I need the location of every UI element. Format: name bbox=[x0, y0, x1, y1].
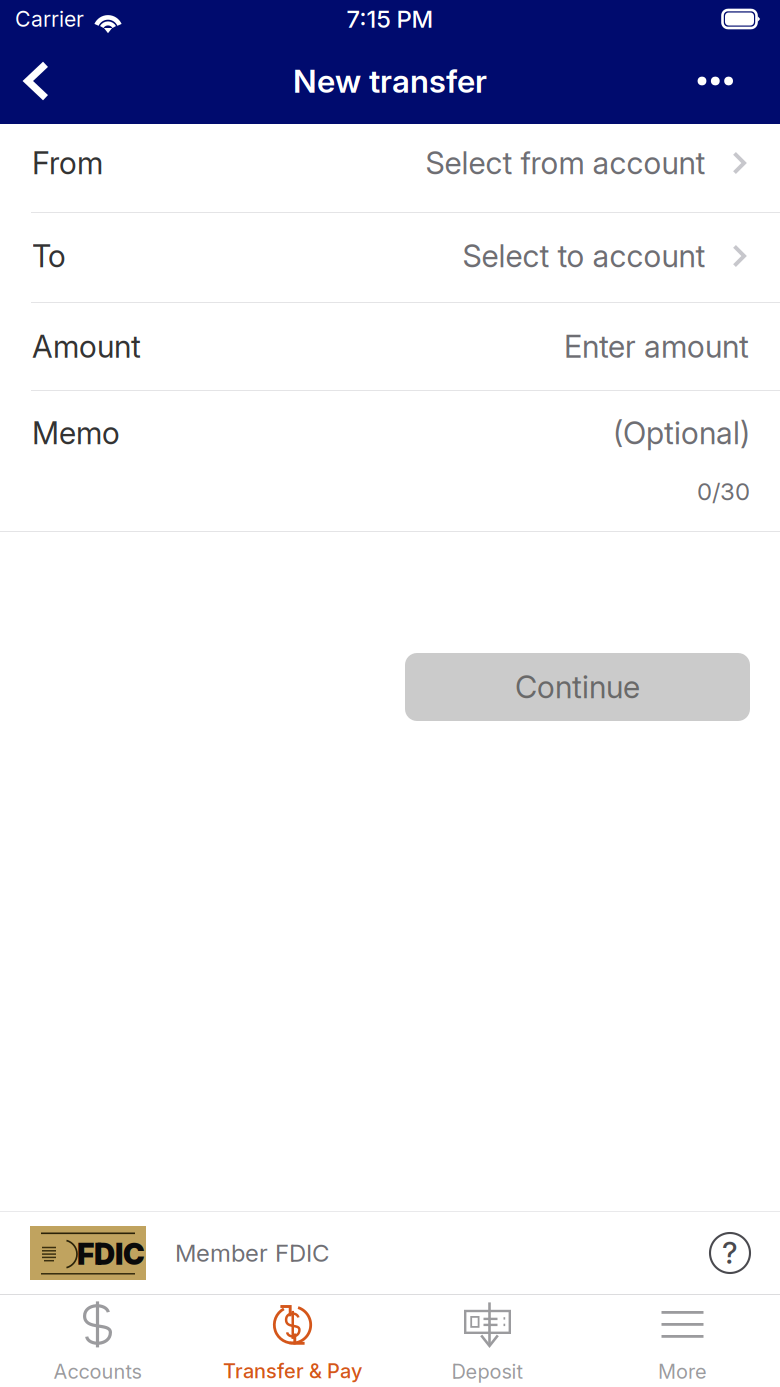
button[interactable]: Deposit bbox=[390, 1295, 585, 1387]
button[interactable]: Memo bbox=[0, 391, 780, 531]
staticText: 0/30 bbox=[697, 477, 750, 506]
button[interactable]: More bbox=[585, 1295, 780, 1387]
staticText: From bbox=[32, 144, 103, 181]
button[interactable]: Transfer & Pay bbox=[195, 1295, 390, 1387]
button[interactable]: From bbox=[0, 124, 780, 212]
button[interactable]: Continue bbox=[405, 653, 750, 721]
staticText: Amount bbox=[32, 328, 141, 365]
button[interactable]: More options bbox=[680, 38, 780, 124]
button[interactable]: Accounts bbox=[0, 1295, 195, 1387]
staticText: Enter amount bbox=[564, 328, 749, 365]
staticText: More bbox=[658, 1359, 707, 1384]
staticText: Continue bbox=[515, 668, 640, 705]
staticText: (Optional) bbox=[613, 414, 750, 451]
staticText: 7:15 PM bbox=[346, 4, 433, 33]
staticText: Transfer & Pay bbox=[223, 1359, 362, 1383]
staticText: ? bbox=[722, 1235, 738, 1271]
staticText: FDIC bbox=[77, 1236, 145, 1272]
button[interactable]: Amount bbox=[0, 303, 780, 390]
staticText: Select to account bbox=[462, 237, 705, 274]
button[interactable]: Back bbox=[0, 38, 100, 124]
staticText: Memo bbox=[32, 414, 120, 451]
staticText: Carrier bbox=[15, 6, 84, 32]
staticText: Deposit bbox=[451, 1359, 523, 1384]
staticText: To bbox=[32, 237, 66, 274]
staticText: Member FDIC bbox=[175, 1238, 329, 1267]
staticText: New transfer bbox=[293, 62, 487, 100]
button[interactable]: Help bbox=[710, 1233, 750, 1273]
staticText: Accounts bbox=[53, 1359, 141, 1384]
button[interactable]: To bbox=[0, 213, 780, 302]
staticText: Select from account bbox=[425, 144, 705, 181]
